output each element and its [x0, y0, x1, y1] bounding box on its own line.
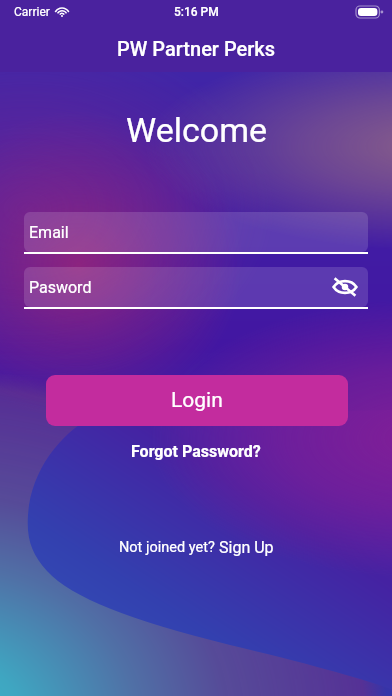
button[interactable]: Login	[46, 375, 348, 426]
staticText: Pasword	[29, 278, 92, 297]
button[interactable]: Forgot Password?	[127, 438, 265, 465]
staticText: Forgot Password?	[131, 442, 261, 461]
staticText: PW Partner Perks	[117, 37, 276, 60]
button[interactable]: Sign Up	[219, 538, 274, 557]
staticText: Carrier	[14, 5, 50, 19]
staticText: 5:16 PM	[174, 5, 219, 19]
staticText: Email	[29, 223, 69, 242]
staticText: Not joined yet?	[119, 539, 219, 556]
staticText: Sign Up	[219, 538, 274, 557]
staticText: Login	[171, 388, 223, 413]
button[interactable]: Email	[24, 212, 368, 252]
button[interactable]: Show password	[332, 274, 358, 300]
staticText: Welcome	[126, 110, 267, 150]
button[interactable]: Pasword	[24, 267, 368, 307]
